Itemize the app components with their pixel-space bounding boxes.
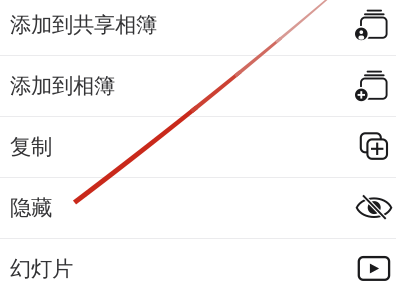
- button[interactable]: 隐藏: [0, 177, 400, 238]
- staticText: 添加到相簿: [10, 73, 115, 99]
- button[interactable]: 添加到共享相簿: [0, 0, 400, 55]
- staticText: 添加到共享相簿: [10, 12, 157, 38]
- button[interactable]: 复制: [0, 116, 400, 177]
- staticText: 幻灯片: [10, 256, 73, 282]
- staticText: 复制: [10, 134, 52, 160]
- button[interactable]: 幻灯片: [0, 238, 400, 299]
- staticText: 隐藏: [10, 195, 52, 221]
- button[interactable]: 添加到相簿: [0, 55, 400, 116]
